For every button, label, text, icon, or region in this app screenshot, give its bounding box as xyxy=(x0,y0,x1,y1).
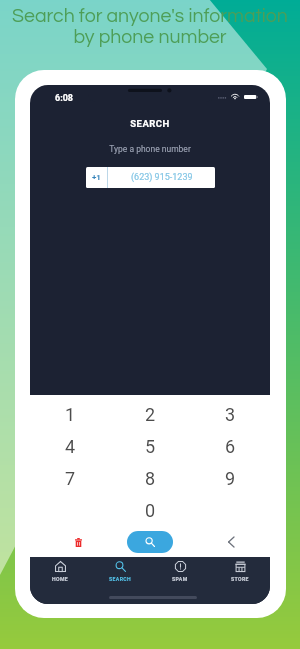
button[interactable]: Backspace xyxy=(220,531,242,553)
button[interactable]: 7 xyxy=(30,462,110,494)
staticText: 8 xyxy=(145,468,156,489)
button[interactable]: HOME xyxy=(30,561,90,604)
staticText: 4 xyxy=(65,436,76,457)
button[interactable]: SPAM xyxy=(150,561,210,604)
button[interactable]: 2 xyxy=(110,398,190,430)
staticText: by phone number xyxy=(73,27,227,47)
button[interactable]: 4 xyxy=(30,430,110,462)
staticText: 6:08 xyxy=(55,93,74,104)
button[interactable]: 1 xyxy=(30,398,110,430)
staticText: +1 xyxy=(92,173,101,182)
staticText: 9 xyxy=(225,468,236,489)
staticText: SEARCH xyxy=(109,576,132,582)
button[interactable]: 8 xyxy=(110,462,190,494)
button[interactable]: +1 xyxy=(86,167,215,188)
staticText: 2 xyxy=(145,404,156,425)
button[interactable]: 0 xyxy=(110,494,190,526)
staticText: 0 xyxy=(145,500,156,521)
staticText: STORE xyxy=(231,576,249,582)
staticText: HOME xyxy=(52,576,69,582)
staticText: 6 xyxy=(225,436,236,457)
button[interactable]: Delete xyxy=(67,531,89,553)
staticText: 5 xyxy=(145,436,156,457)
staticText: SEARCH xyxy=(30,118,270,129)
button[interactable]: 5 xyxy=(110,430,190,462)
staticText: 7 xyxy=(65,468,76,489)
staticText: Search for anyone's information xyxy=(12,6,288,26)
staticText: 3 xyxy=(225,404,236,425)
button[interactable]: Search xyxy=(127,531,173,553)
button[interactable]: 6 xyxy=(190,430,270,462)
staticText: 1 xyxy=(65,404,76,425)
staticText: Type a phone number xyxy=(30,144,270,154)
button[interactable]: STORE xyxy=(210,561,270,604)
button[interactable]: 3 xyxy=(190,398,270,430)
staticText: (623) 915-1239 xyxy=(131,172,193,183)
button[interactable]: SEARCH xyxy=(90,561,150,604)
staticText: SPAM xyxy=(172,576,188,582)
button[interactable]: 9 xyxy=(190,462,270,494)
